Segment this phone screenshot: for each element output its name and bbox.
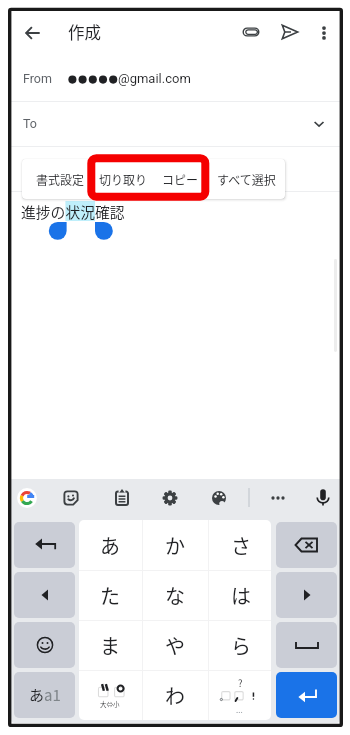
button[interactable]: な <box>142 570 208 620</box>
staticText: 大⇔小 <box>100 699 120 708</box>
staticText: ... <box>236 704 243 716</box>
staticText: ら <box>231 631 251 660</box>
button[interactable]: は <box>208 570 274 620</box>
staticText: は <box>231 581 251 610</box>
button[interactable]: More options <box>304 13 340 53</box>
button[interactable]: Enter <box>276 672 337 718</box>
button[interactable]: わ <box>142 670 208 720</box>
button[interactable]: More <box>265 485 291 511</box>
staticText: To <box>23 116 37 131</box>
button[interactable]: Back <box>11 11 55 55</box>
button[interactable]: Emoji <box>14 622 75 668</box>
staticText: た <box>100 581 120 610</box>
button[interactable]: さ <box>208 520 274 570</box>
button[interactable]: すべて選択 <box>207 159 285 199</box>
button[interactable]: ま <box>77 620 143 670</box>
staticText: な <box>165 581 185 610</box>
staticText: あa1 <box>29 684 61 706</box>
button[interactable]: 切り取り <box>92 159 155 199</box>
button[interactable]: コピー <box>155 159 205 199</box>
staticText: さ <box>231 531 251 560</box>
button[interactable]: Cursor left <box>14 572 75 618</box>
button[interactable]: 書式設定 <box>29 159 91 199</box>
staticText: 作成 <box>68 20 101 44</box>
button[interactable]: Cursor right <box>276 572 337 618</box>
staticText: すべて選択 <box>217 171 276 188</box>
button[interactable]: Attach file <box>229 11 273 54</box>
staticText: 進捗の状況確認 <box>21 201 125 221</box>
button[interactable]: Delete <box>276 522 337 568</box>
staticText: 切り取り <box>99 171 148 188</box>
button[interactable]: Dakuten <box>77 670 143 720</box>
button[interactable]: あ <box>77 520 143 570</box>
button[interactable]: Punctuation <box>208 670 274 720</box>
button[interactable]: Settings <box>157 485 183 511</box>
staticText: か <box>165 531 185 560</box>
button[interactable]: や <box>142 620 208 670</box>
button[interactable]: Space <box>276 622 337 668</box>
staticText: わ <box>165 681 185 710</box>
staticText: や <box>165 631 185 660</box>
button[interactable]: ら <box>208 620 274 670</box>
staticText: @gmail.com <box>118 71 191 86</box>
staticText: ? <box>238 676 243 690</box>
button[interactable]: Switch input mode <box>14 672 75 718</box>
button[interactable]: か <box>142 520 208 570</box>
staticText: From <box>23 71 52 86</box>
button[interactable]: Voice input <box>310 485 336 511</box>
button[interactable]: Theme <box>206 485 232 511</box>
staticText: ま <box>100 631 120 660</box>
button[interactable]: Undo <box>14 522 75 568</box>
button[interactable]: Stickers <box>58 485 84 511</box>
staticText: コピー <box>162 171 199 188</box>
button[interactable]: Google <box>14 485 40 511</box>
staticText: あ <box>100 531 120 560</box>
button[interactable]: Clipboard <box>109 485 135 511</box>
staticText: 書式設定 <box>36 171 85 188</box>
button[interactable]: た <box>77 570 143 620</box>
button[interactable]: Expand recipients <box>299 104 339 144</box>
button[interactable]: Send <box>268 11 312 54</box>
